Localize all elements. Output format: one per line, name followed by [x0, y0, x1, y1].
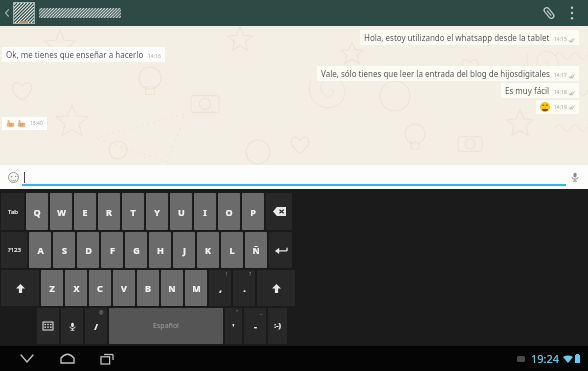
staticText: T: [130, 206, 136, 218]
staticText: /: [94, 320, 98, 332]
staticText: !: [226, 271, 228, 278]
button[interactable]: Recent apps: [92, 346, 122, 371]
button[interactable]: U: [170, 193, 192, 230]
button[interactable]: P: [242, 193, 264, 230]
button[interactable]: A: [29, 232, 51, 268]
staticText: B: [145, 282, 151, 294]
button[interactable]: M: [185, 270, 207, 306]
button[interactable]: J: [173, 232, 195, 268]
button[interactable]: Ok, me tienes que enseñar a hacerlo: [2, 47, 165, 62]
button[interactable]: Shift: [1, 270, 39, 306]
staticText: O: [225, 206, 233, 218]
button[interactable]: Voice input: [61, 308, 83, 344]
button[interactable]: ?: [233, 270, 255, 306]
button[interactable]: W: [50, 193, 72, 230]
button[interactable]: Español: [109, 308, 223, 344]
button[interactable]: _: [244, 308, 266, 344]
staticText: 14:19: [554, 104, 567, 111]
button[interactable]: ?123: [1, 232, 27, 268]
staticText: 15:40: [30, 120, 43, 127]
staticText: H: [157, 244, 164, 256]
staticText: R: [106, 206, 112, 218]
button[interactable]: Switch keyboard: [37, 308, 59, 344]
staticText: U: [178, 206, 185, 218]
staticText: E: [82, 206, 88, 218]
staticText: Español: [153, 321, 179, 331]
staticText: Ok, me tienes que enseñar a hacerlo: [6, 49, 144, 60]
button[interactable]: R: [98, 193, 120, 230]
button[interactable]: :-): [268, 308, 287, 344]
button[interactable]: T: [122, 193, 144, 230]
button[interactable]: Y: [146, 193, 168, 230]
button[interactable]: Es muy fácil: [501, 83, 579, 98]
button[interactable]: V: [113, 270, 135, 306]
staticText: J: [183, 244, 186, 256]
button[interactable]: N: [161, 270, 183, 306]
button[interactable]: H: [149, 232, 171, 268]
staticText: D: [85, 244, 92, 256]
button[interactable]: E: [74, 193, 96, 230]
staticText: Q: [33, 206, 41, 218]
staticText: ,: [219, 282, 222, 294]
staticText: 14:17: [554, 72, 567, 79]
button[interactable]: Hola, estoy utilizando el whatsapp desde…: [360, 30, 579, 45]
staticText: Hola, estoy utilizando el whatsapp desde…: [364, 32, 550, 43]
button[interactable]: O: [218, 193, 240, 230]
staticText: L: [229, 244, 235, 256]
button[interactable]: Back: [2, 0, 11, 26]
button[interactable]: 14:19: [536, 100, 579, 114]
staticText: Y: [154, 206, 160, 218]
button[interactable]: Contact photo: [13, 2, 35, 24]
button[interactable]: X: [65, 270, 87, 306]
staticText: ': [232, 320, 235, 332]
button[interactable]: Home: [52, 346, 82, 371]
staticText: -: [254, 320, 257, 332]
button[interactable]: ": [225, 308, 242, 344]
staticText: Ñ: [252, 244, 260, 256]
button[interactable]: Ñ: [245, 232, 267, 268]
staticText: Tab: [8, 208, 18, 216]
staticText: ": [236, 309, 239, 316]
button[interactable]: L: [221, 232, 243, 268]
staticText: _: [260, 309, 263, 316]
staticText: C: [97, 282, 103, 294]
button[interactable]: Q: [26, 193, 48, 230]
button[interactable]: Voice message: [566, 168, 584, 186]
staticText: P: [250, 206, 256, 218]
button[interactable]: D: [77, 232, 99, 268]
button[interactable]: 15:40: [2, 117, 47, 130]
button[interactable]: F: [101, 232, 123, 268]
button[interactable]: Backspace: [266, 193, 292, 230]
staticText: F: [110, 244, 115, 256]
button[interactable]: K: [197, 232, 219, 268]
staticText: 14:18: [554, 89, 567, 96]
button[interactable]: !: [209, 270, 231, 306]
staticText: 19:24: [531, 351, 560, 366]
button[interactable]: S: [53, 232, 75, 268]
staticText: Vale, sólo tienes que leer la entrada de…: [321, 68, 550, 79]
button[interactable]: More options: [562, 0, 582, 26]
button[interactable]: Attach: [536, 0, 562, 26]
staticText: @: [99, 309, 104, 316]
button[interactable]: Shift: [257, 270, 295, 306]
button[interactable]: G: [125, 232, 147, 268]
staticText: Z: [49, 282, 55, 294]
button[interactable]: B: [137, 270, 159, 306]
button[interactable]: Vale, sólo tienes que leer la entrada de…: [317, 66, 579, 81]
button[interactable]: Enter: [269, 232, 292, 268]
button[interactable]: @: [85, 308, 107, 344]
staticText: M: [192, 282, 201, 294]
staticText: G: [133, 244, 140, 256]
button[interactable]: [22, 165, 566, 189]
staticText: N: [168, 282, 176, 294]
staticText: K: [205, 244, 211, 256]
button[interactable]: Emoji: [4, 168, 22, 186]
button[interactable]: I: [194, 193, 216, 230]
button[interactable]: Tab: [1, 193, 24, 230]
staticText: 14:16: [148, 53, 161, 60]
staticText: ?: [249, 271, 252, 278]
button[interactable]: Z: [41, 270, 63, 306]
button[interactable]: Back: [12, 346, 42, 371]
staticText: Es muy fácil: [505, 85, 550, 96]
button[interactable]: C: [89, 270, 111, 306]
